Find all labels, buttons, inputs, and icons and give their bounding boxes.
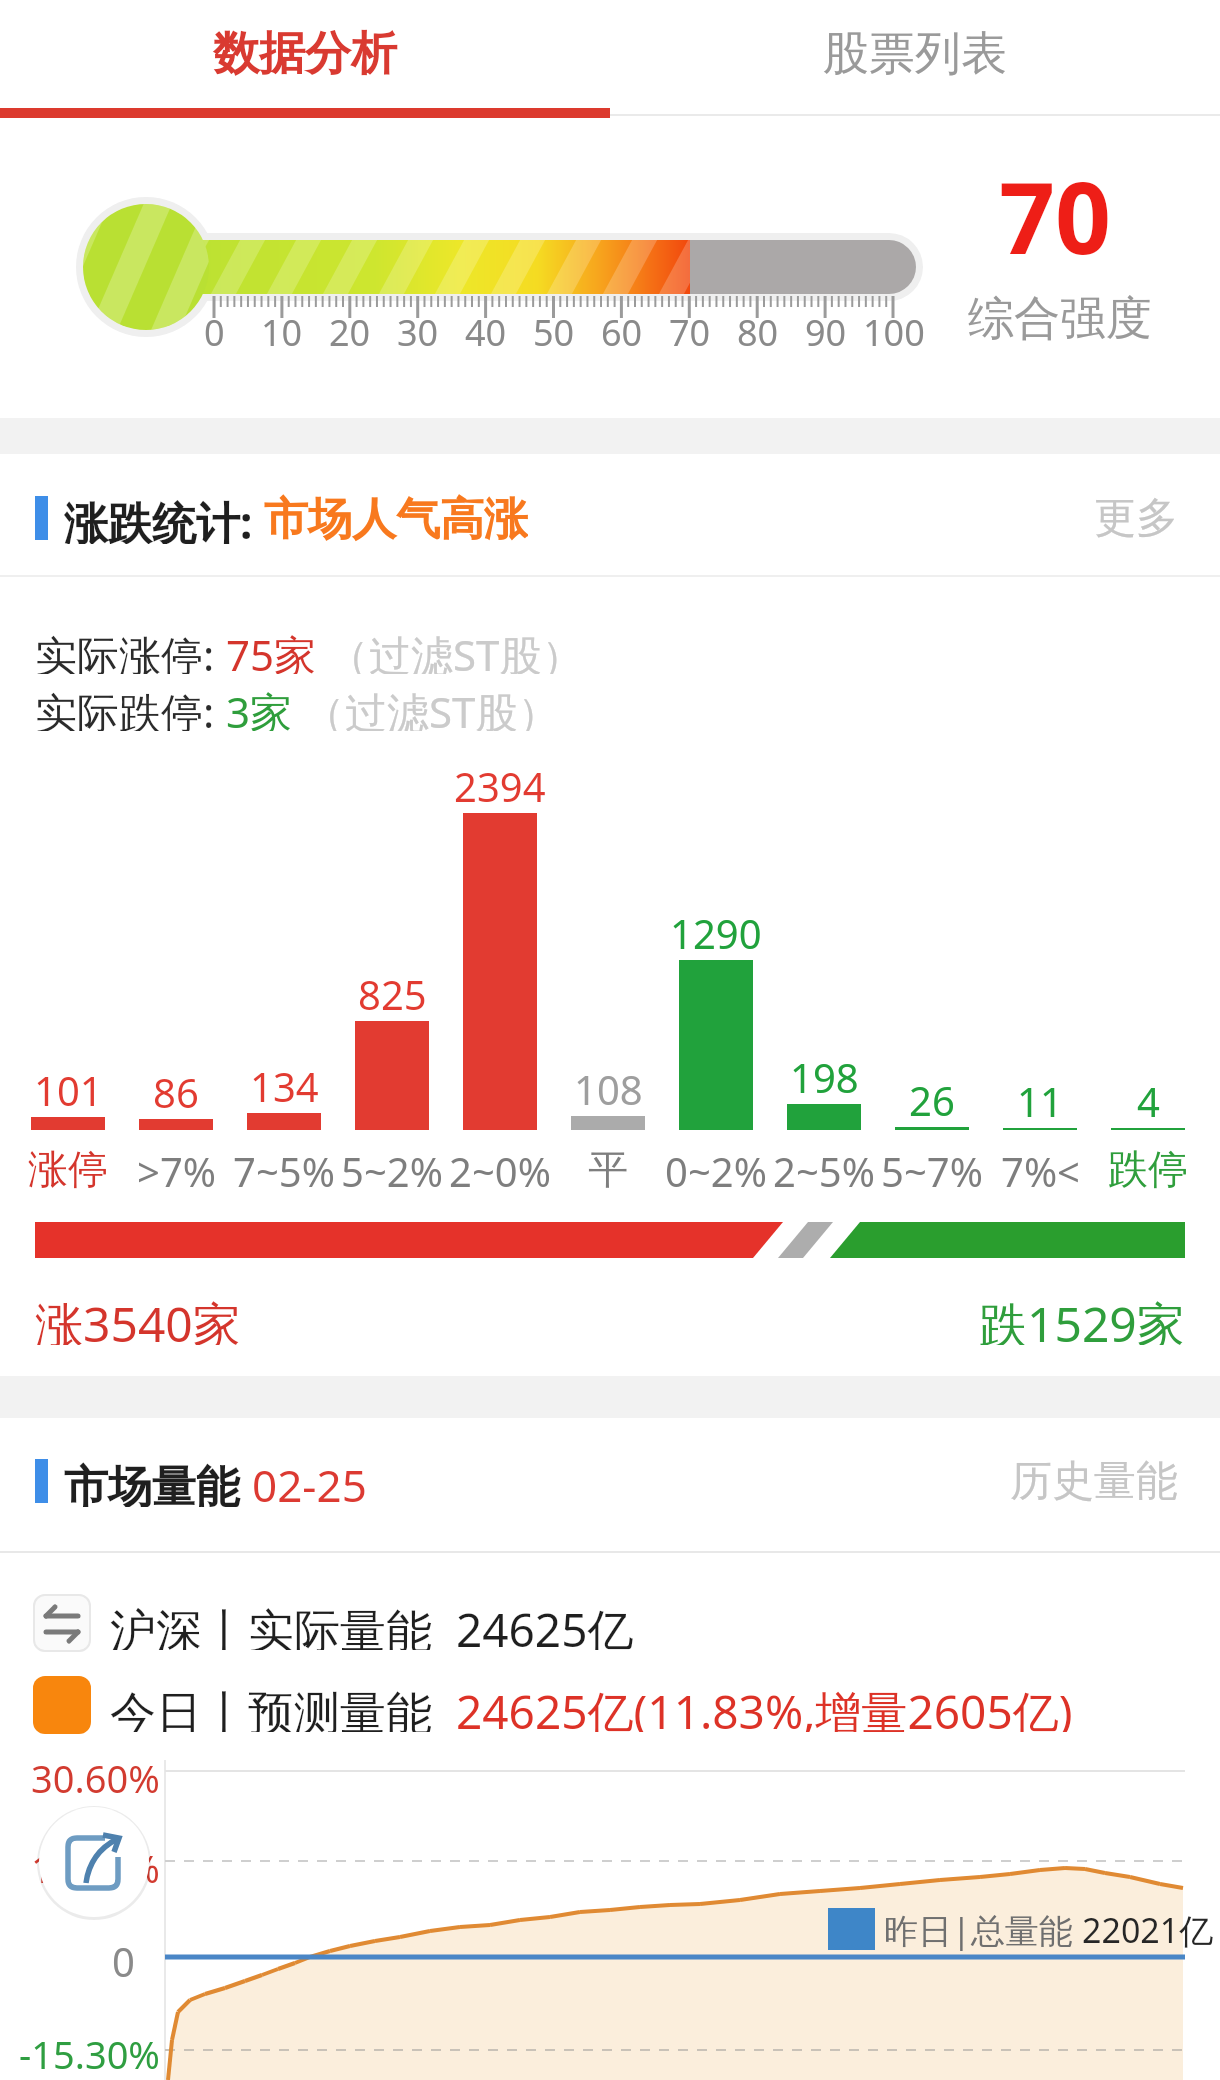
staticText: 涨跌统计: <box>64 492 264 544</box>
staticText: 市场人气高涨 <box>264 492 528 544</box>
staticText: 825 <box>358 967 427 1013</box>
staticText: 30.60% <box>31 1752 160 1796</box>
staticText: 4 <box>1137 1074 1160 1120</box>
staticText: （过滤ST股） <box>303 683 560 731</box>
staticText: 涨停 <box>28 1144 108 1190</box>
staticText: 50 <box>533 308 575 352</box>
staticText: 5~7% <box>881 1144 983 1190</box>
staticText: 综合强度 <box>968 290 1152 342</box>
button[interactable] <box>39 1807 149 1917</box>
staticText: 更多 <box>1094 492 1178 544</box>
staticText: 7~5% <box>233 1144 335 1190</box>
staticText: 86 <box>153 1065 199 1111</box>
staticText: 跌停 <box>1108 1144 1188 1190</box>
staticText: 15.30% <box>31 1842 160 1886</box>
staticText: 1290 <box>670 906 762 952</box>
button[interactable]: 股票列表 <box>610 0 1220 108</box>
staticText: 80 <box>737 308 779 352</box>
staticText: 108 <box>574 1062 643 1108</box>
staticText: 90 <box>805 308 847 352</box>
staticText: 7%< <box>1001 1144 1080 1190</box>
staticText: 26 <box>909 1073 955 1119</box>
staticText: 0 <box>112 1934 135 1978</box>
staticText: 30 <box>397 308 439 352</box>
button[interactable]: 历史量能 <box>948 1455 1178 1507</box>
staticText: 10 <box>261 308 303 352</box>
staticText: 134 <box>250 1059 319 1105</box>
staticText: 24625亿(11.83%,增量2605亿) <box>456 1680 1073 1732</box>
button[interactable]: 更多 <box>948 492 1178 544</box>
staticText: >7% <box>137 1144 216 1190</box>
staticText: 0~2% <box>665 1144 767 1190</box>
staticText: 70 <box>669 308 711 352</box>
staticText: 11 <box>1017 1074 1063 1120</box>
staticText: 70 <box>999 149 1112 259</box>
staticText: 股票列表 <box>823 25 1007 83</box>
staticText: 0 <box>204 308 225 352</box>
staticText: 实际涨停: <box>35 626 226 674</box>
staticText: （过滤ST股） <box>327 626 584 674</box>
staticText: 101 <box>34 1063 103 1109</box>
staticText: 5~2% <box>341 1144 443 1190</box>
staticText: 数据分析 <box>213 25 397 83</box>
staticText: 3家 <box>226 683 303 731</box>
staticText: 198 <box>790 1050 859 1096</box>
staticText: 市场量能 <box>64 1455 252 1507</box>
staticText: 实际跌停: <box>35 683 226 731</box>
staticText: 22021亿 <box>1082 1907 1214 1951</box>
staticText: -15.30% <box>19 2028 160 2072</box>
staticText: 2~0% <box>449 1144 551 1190</box>
staticText: 跌1529家 <box>979 1291 1185 1345</box>
staticText: 40 <box>465 308 507 352</box>
staticText: 75家 <box>226 626 327 674</box>
staticText: 100 <box>863 308 925 352</box>
staticText: 2394 <box>454 759 546 805</box>
staticText: 沪深丨实际量能 24625亿 <box>110 1598 634 1650</box>
staticText: 02-25 <box>252 1455 367 1507</box>
staticText: 历史量能 <box>1010 1455 1178 1507</box>
staticText: 2~5% <box>773 1144 875 1190</box>
button[interactable]: 数据分析 <box>0 0 610 108</box>
staticText: 60 <box>601 308 643 352</box>
staticText: 昨日|总量能 <box>884 1907 1082 1951</box>
staticText: 平 <box>588 1144 628 1190</box>
staticText: 20 <box>329 308 371 352</box>
staticText: 今日丨预测量能 <box>110 1680 456 1732</box>
staticText: 涨3540家 <box>35 1291 241 1345</box>
